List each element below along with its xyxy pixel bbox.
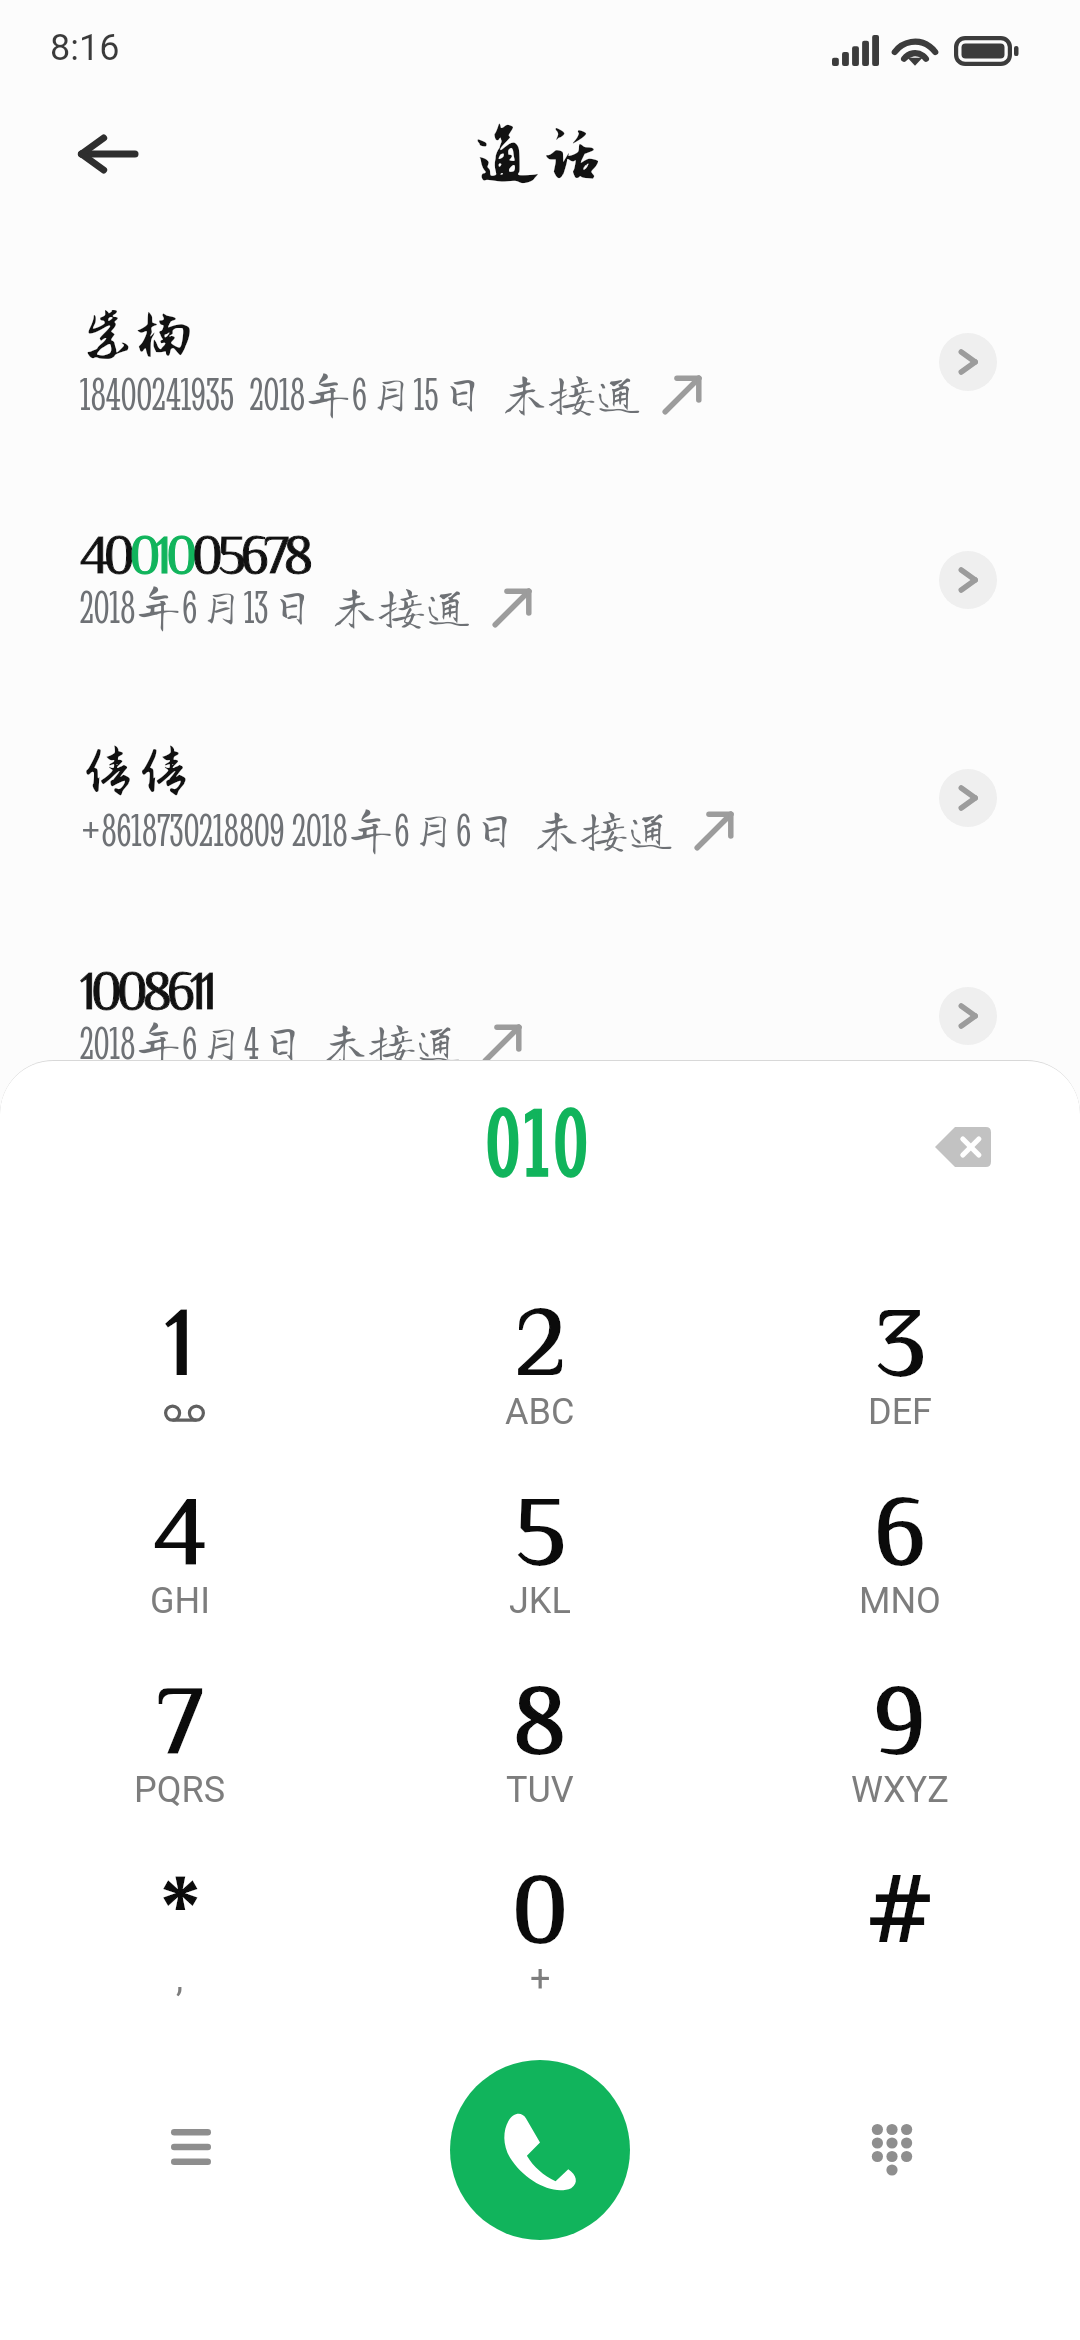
button[interactable]: 1 [0,1312,360,1442]
staticText: 5 [515,1479,566,1575]
staticText: 2018年6月13日 未接通 [80,581,473,634]
staticText: 18400241935 2018年6月15日 未接通 [80,368,643,421]
button[interactable]: 5 [360,1501,720,1631]
staticText: 2018年6月4日 未接通 [80,1017,463,1070]
staticText: # [868,1857,933,1953]
staticText: 7 [157,1668,203,1764]
staticText: 1 [165,1290,195,1386]
staticText: 6 [874,1479,926,1575]
staticText: 0 [512,1857,569,1953]
staticText: +8618730218809 2018年6月6日 未接通 [80,804,675,857]
button[interactable]: Dialpad [842,2097,942,2197]
staticText: TUV [506,1769,574,1811]
staticText: 5 [515,1479,566,1575]
staticText: 8 [513,1668,567,1764]
staticText: * [160,1857,201,1953]
staticText: 7 [157,1668,203,1764]
staticText: 1008611 [80,962,212,1015]
button[interactable]: 6 [720,1501,1080,1631]
button[interactable]: 8 [360,1690,720,1820]
staticText: 4001005678 [80,526,308,579]
button[interactable]: 9 [720,1690,1080,1820]
staticText: 8 [513,1668,567,1764]
button[interactable]: 4001005678 [0,508,1080,652]
button[interactable]: 1008611 [0,944,1080,1088]
staticText: 0 [512,1857,569,1953]
staticText: 9 [874,1668,926,1764]
button[interactable]: 0 [360,1879,720,2009]
button[interactable]: 倩倩 [0,726,1080,870]
button[interactable]: 紫楠 [0,290,1080,434]
staticText: MNO [859,1580,941,1622]
button[interactable]: # [720,1879,1080,2009]
staticText: 2 [515,1290,566,1386]
button[interactable]: 7 [0,1690,360,1820]
staticText: , [176,1958,184,2000]
staticText: 9 [874,1668,926,1764]
staticText: 3 [875,1290,926,1386]
staticText: # [868,1857,933,1953]
button[interactable]: 3 [720,1312,1080,1442]
staticText: + [530,1958,551,2000]
staticText: 1008611 [80,962,212,1015]
button[interactable]: * [0,1879,360,2009]
button[interactable]: Back [56,104,156,204]
staticText: 3 [875,1290,926,1386]
button[interactable]: Call [450,2060,630,2240]
staticText: 紫楠 [80,304,192,366]
staticText: GHI [150,1580,210,1622]
button[interactable]: 2 [360,1312,720,1442]
staticText: 1 [165,1290,195,1386]
button[interactable]: Delete [913,1097,1013,1197]
staticText: PQRS [134,1769,226,1811]
staticText: 通话 [475,119,605,191]
staticText: 010 [487,1089,594,1197]
button[interactable]: Open call details [939,769,997,827]
staticText: * [160,1857,201,1953]
staticText: ABC [505,1391,575,1433]
staticText: DEF [868,1391,932,1433]
staticText: JKL [509,1580,571,1622]
staticText: 倩倩 [80,740,192,802]
staticText: 6 [874,1479,926,1575]
staticText: 4001005678 [80,526,308,579]
button[interactable]: 4 [0,1501,360,1631]
staticText: 8:16 [50,27,120,69]
staticText: 4 [154,1479,207,1575]
button[interactable]: Open call details [939,551,997,609]
button[interactable]: Open call details [939,333,997,391]
button[interactable]: Menu [141,2097,241,2197]
button[interactable]: Open call details [939,987,997,1045]
staticText: WXYZ [851,1769,949,1811]
staticText: 010 [487,1089,594,1197]
staticText: 4 [154,1479,207,1575]
staticText: 2 [515,1290,566,1386]
